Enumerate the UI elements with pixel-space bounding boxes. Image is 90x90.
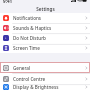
staticText: Sounds & Haptics [13, 25, 52, 31]
staticText: 9:41 [3, 0, 13, 3]
staticText: Control Centre [13, 76, 46, 82]
staticText: Settings [36, 6, 55, 12]
button[interactable]: Screen Time [0, 43, 90, 53]
button[interactable]: Display & Brightness [0, 84, 90, 90]
button[interactable]: Sounds & Haptics [0, 23, 90, 33]
staticText: Display & Brightness [13, 84, 59, 90]
button[interactable]: General [0, 62, 90, 73]
button[interactable]: Control Centre [0, 73, 90, 84]
button[interactable]: Notifications [0, 13, 90, 23]
button[interactable]: Do Not Disturb [0, 33, 90, 43]
staticText: General [13, 65, 31, 71]
staticText: Notifications [13, 15, 42, 21]
staticText: Screen Time [13, 45, 40, 51]
staticText: Do Not Disturb [13, 35, 46, 41]
